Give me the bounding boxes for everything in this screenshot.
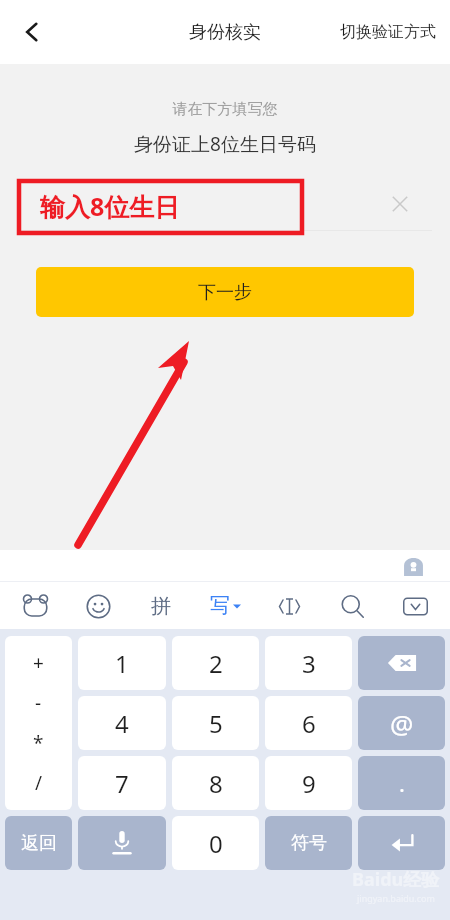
staticText: 9 <box>302 767 316 800</box>
staticText: 5 <box>209 707 223 740</box>
button[interactable]: 切换验证方式 <box>336 10 440 54</box>
button[interactable]: 7 <box>78 756 166 810</box>
staticText: 拼 <box>151 594 171 619</box>
button[interactable]: 1 <box>78 636 166 690</box>
button[interactable]: Move cursor <box>270 587 308 625</box>
staticText: 2 <box>209 647 223 680</box>
staticText: 身份核实 <box>189 21 261 44</box>
button[interactable]: Pinyin mode <box>142 587 180 625</box>
button[interactable]: 4 <box>78 696 166 750</box>
staticText: @ <box>390 706 414 741</box>
staticText: 符号 <box>291 832 327 855</box>
staticText: 4 <box>115 707 129 740</box>
button[interactable]: 下一步 <box>36 267 414 317</box>
button[interactable]: 2 <box>172 636 259 690</box>
button[interactable]: 6 <box>265 696 352 750</box>
button[interactable]: @ <box>358 696 445 750</box>
staticText: 写 <box>210 593 230 618</box>
staticText: 7 <box>115 767 129 800</box>
staticText: 8 <box>209 767 223 800</box>
button[interactable]: 符号 <box>265 816 352 870</box>
button[interactable]: . <box>358 756 445 810</box>
staticText: - <box>35 690 42 716</box>
staticText: 6 <box>302 707 316 740</box>
button[interactable]: Clear <box>0 177 450 231</box>
button[interactable]: 0 <box>172 816 259 870</box>
staticText: / <box>35 770 43 796</box>
button[interactable]: Handwriting mode <box>206 585 245 626</box>
button[interactable]: 5 <box>172 696 259 750</box>
button[interactable]: 返回 <box>5 816 72 870</box>
button[interactable]: Operators <box>5 636 72 810</box>
button[interactable]: Backspace <box>358 636 445 690</box>
staticText: . <box>399 768 405 798</box>
button[interactable]: Emoji <box>79 587 117 625</box>
staticText: 下一步 <box>198 281 252 304</box>
button[interactable]: Voice input <box>78 816 166 870</box>
button[interactable]: Search <box>333 587 371 625</box>
button[interactable]: Back <box>6 6 58 58</box>
staticText: 身份证上8位生日号码 <box>0 131 450 157</box>
button[interactable]: Baidu input <box>16 587 54 625</box>
staticText: 0 <box>209 827 223 860</box>
staticText: * <box>33 730 44 756</box>
staticText: 切换验证方式 <box>340 22 436 42</box>
button[interactable]: 3 <box>265 636 352 690</box>
button[interactable]: Enter <box>358 816 445 870</box>
staticText: 请在下方填写您 <box>0 100 450 119</box>
button[interactable]: 9 <box>265 756 352 810</box>
staticText: jingyan.baidu.com <box>357 892 435 904</box>
staticText: 3 <box>302 647 316 680</box>
staticText: 输入8位生日 <box>40 189 180 223</box>
button[interactable]: 8 <box>172 756 259 810</box>
button[interactable]: Account <box>403 555 424 576</box>
staticText: 返回 <box>21 832 57 855</box>
staticText: + <box>33 650 44 676</box>
button[interactable]: Hide keyboard <box>396 587 434 625</box>
staticText: Baidu经验 <box>352 867 440 892</box>
button[interactable]: Clear <box>388 192 412 216</box>
staticText: 1 <box>115 647 129 680</box>
